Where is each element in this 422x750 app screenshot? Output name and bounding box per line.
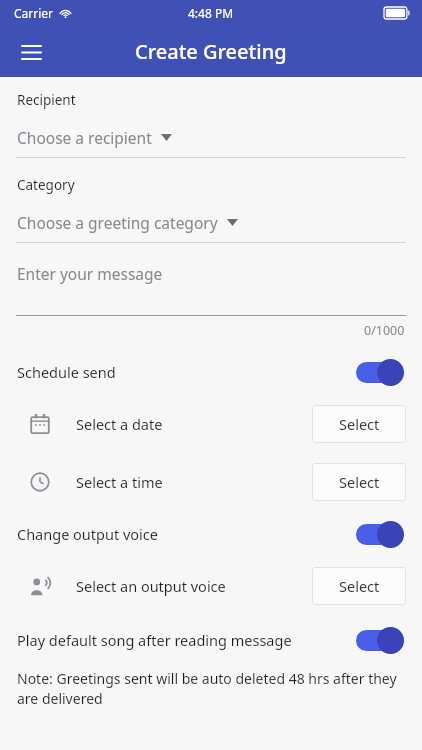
staticText: 4:48 PM	[188, 5, 234, 21]
staticText: Category	[17, 176, 75, 194]
staticText: Select a date	[76, 414, 163, 434]
staticText: Choose a recipient	[17, 127, 152, 148]
button[interactable]: Play default song after reading message	[0, 625, 422, 655]
staticText: Note: Greetings sent will be auto delete…	[17, 669, 400, 708]
button[interactable]: Select	[312, 405, 406, 443]
staticText: Select	[339, 414, 380, 434]
staticText: Carrier	[14, 5, 54, 21]
staticText: Select	[339, 472, 380, 492]
staticText: Create Greeting	[135, 38, 287, 65]
staticText: Enter your message	[17, 263, 163, 284]
staticText: 0/1000	[364, 322, 405, 339]
button[interactable]: Open navigation menu	[10, 31, 52, 73]
staticText: Choose a greeting category	[17, 212, 218, 233]
staticText: Select	[339, 576, 380, 596]
button[interactable]: Choose a greeting category	[0, 212, 422, 243]
button[interactable]: Change output voice	[0, 519, 422, 549]
button[interactable]: Choose a recipient	[0, 127, 422, 158]
staticText: Change output voice	[17, 524, 158, 544]
staticText: Play default song after reading message	[17, 630, 292, 650]
button[interactable]: Select	[312, 463, 406, 501]
staticText: Recipient	[17, 91, 76, 109]
button[interactable]: Select	[312, 567, 406, 605]
staticText: Schedule send	[17, 362, 116, 382]
staticText: Select a time	[76, 472, 163, 492]
button[interactable]: Enter your message	[0, 263, 422, 316]
button[interactable]: Schedule send	[0, 357, 422, 387]
staticText: Select an output voice	[76, 576, 226, 596]
